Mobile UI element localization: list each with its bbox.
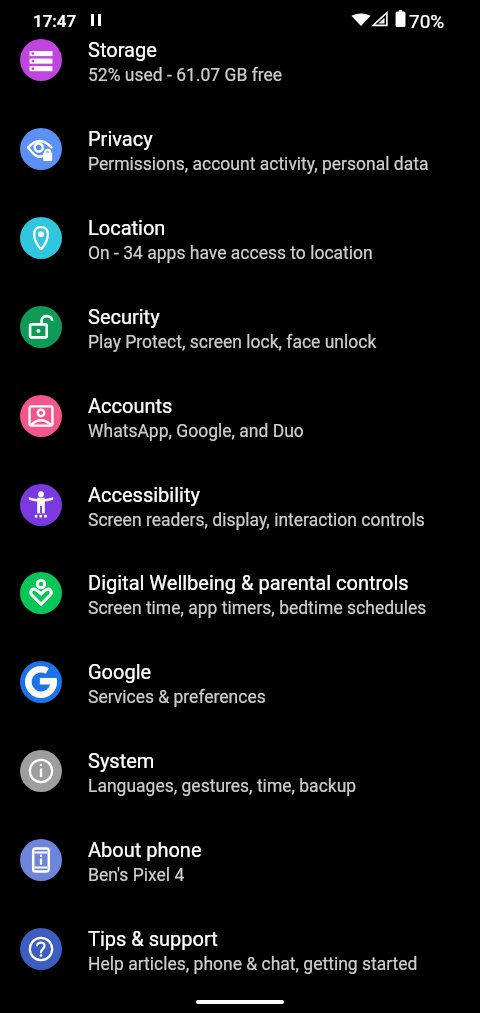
staticText: Languages, gestures, time, backup (88, 776, 357, 797)
staticText: Location (88, 216, 166, 239)
button[interactable]: Security (0, 306, 480, 395)
staticText: Privacy (88, 127, 153, 150)
button[interactable]: Accessibility (0, 484, 480, 573)
staticText: WhatsApp, Google, and Duo (88, 421, 304, 442)
staticText: Permissions, account activity, personal … (88, 154, 429, 175)
staticText: Services & preferences (88, 687, 266, 708)
button[interactable]: About phone (0, 839, 480, 928)
button[interactable]: Digital Wellbeing & parental controls (0, 572, 480, 661)
staticText: On - 34 apps have access to location (88, 243, 373, 264)
staticText: Accounts (88, 394, 173, 417)
button[interactable]: Storage (0, 39, 480, 128)
staticText: System (88, 749, 155, 772)
staticText: Screen readers, display, interaction con… (88, 510, 425, 531)
staticText: Accessibility (88, 483, 200, 506)
button[interactable]: System (0, 750, 480, 839)
staticText: 52% used - 61.07 GB free (88, 65, 283, 86)
staticText: Security (88, 305, 160, 328)
staticText: 17:47 (33, 11, 77, 31)
staticText: 70% (409, 10, 445, 32)
staticText: Play Protect, screen lock, face unlock (88, 332, 377, 353)
staticText: About phone (88, 838, 202, 861)
button[interactable]: Google (0, 661, 480, 750)
button[interactable]: Accounts (0, 395, 480, 484)
staticText: Tips & support (88, 927, 218, 950)
button[interactable]: Tips & support (0, 928, 480, 1013)
staticText: Help articles, phone & chat, getting sta… (88, 954, 418, 975)
staticText: Ben's Pixel 4 (88, 865, 185, 886)
button[interactable]: Location (0, 217, 480, 306)
staticText: Digital Wellbeing & parental controls (88, 571, 409, 594)
staticText: Storage (88, 38, 157, 61)
button[interactable]: Privacy (0, 128, 480, 217)
staticText: Screen time, app timers, bedtime schedul… (88, 598, 427, 619)
staticText: Google (88, 660, 152, 683)
